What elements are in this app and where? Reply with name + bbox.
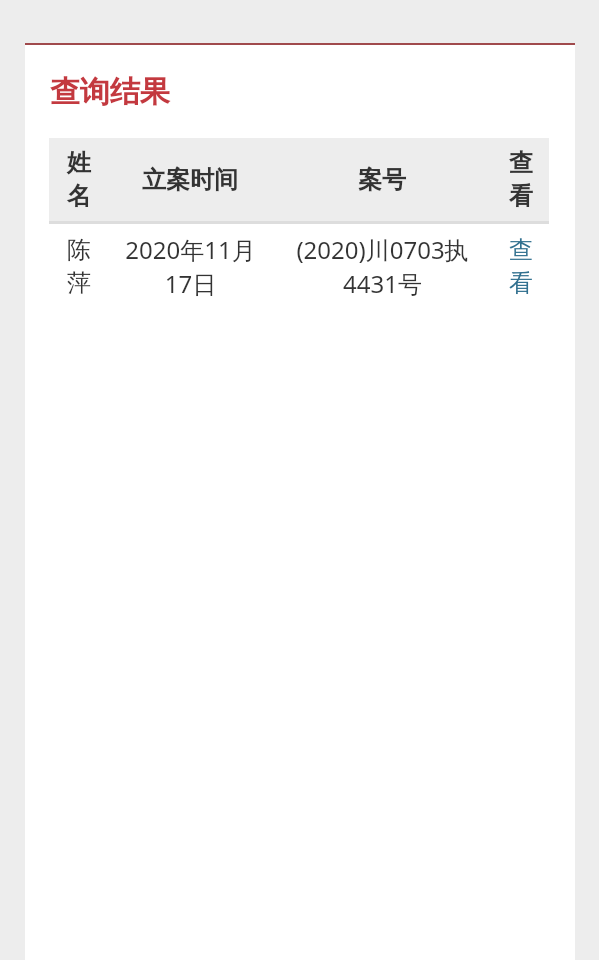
- staticText: 查询结果: [50, 73, 170, 111]
- staticText: 陈 萍: [67, 235, 91, 298]
- staticText: 立案时间: [142, 165, 238, 195]
- staticText: 姓 名: [67, 148, 91, 211]
- staticText: 查 看: [509, 235, 533, 298]
- staticText: 2020年11月 17日: [125, 233, 256, 300]
- staticText: 查 看: [509, 148, 533, 211]
- staticText: (2020)川0703执 4431号: [296, 233, 469, 300]
- staticText: 案号: [358, 165, 406, 195]
- button[interactable]: 查 看: [493, 226, 549, 307]
